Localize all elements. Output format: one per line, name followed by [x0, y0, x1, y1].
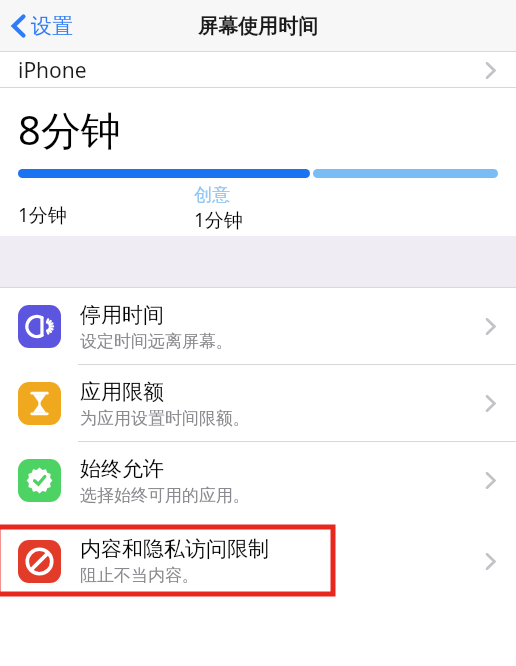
staticText: 始终允许 [80, 456, 164, 482]
staticText: 停用时间 [80, 302, 164, 328]
button[interactable]: 内容和隐私访问限制 [0, 519, 516, 603]
button[interactable]: iPhone [0, 52, 516, 88]
staticText: 设置 [31, 13, 73, 39]
staticText: 1分钟 [194, 207, 243, 233]
staticText: 创意 [194, 184, 230, 207]
button[interactable]: 应用限额 [0, 365, 516, 442]
staticText: 为应用设置时间限额。 [80, 408, 250, 429]
staticText: 应用限额 [80, 379, 164, 405]
staticText: 8分钟 [18, 102, 121, 157]
staticText: iPhone [18, 56, 87, 85]
button[interactable]: 设置 [8, 7, 77, 45]
staticText: 1分钟 [18, 202, 67, 228]
button[interactable]: 始终允许 [0, 442, 516, 519]
staticText: 屏幕使用时间 [198, 14, 318, 39]
staticText: 内容和隐私访问限制 [80, 536, 269, 562]
button[interactable]: 停用时间 [0, 288, 516, 365]
staticText: 设定时间远离屏幕。 [80, 331, 233, 352]
staticText: 选择始终可用的应用。 [80, 485, 250, 506]
staticText: 阻止不当内容。 [80, 565, 199, 586]
